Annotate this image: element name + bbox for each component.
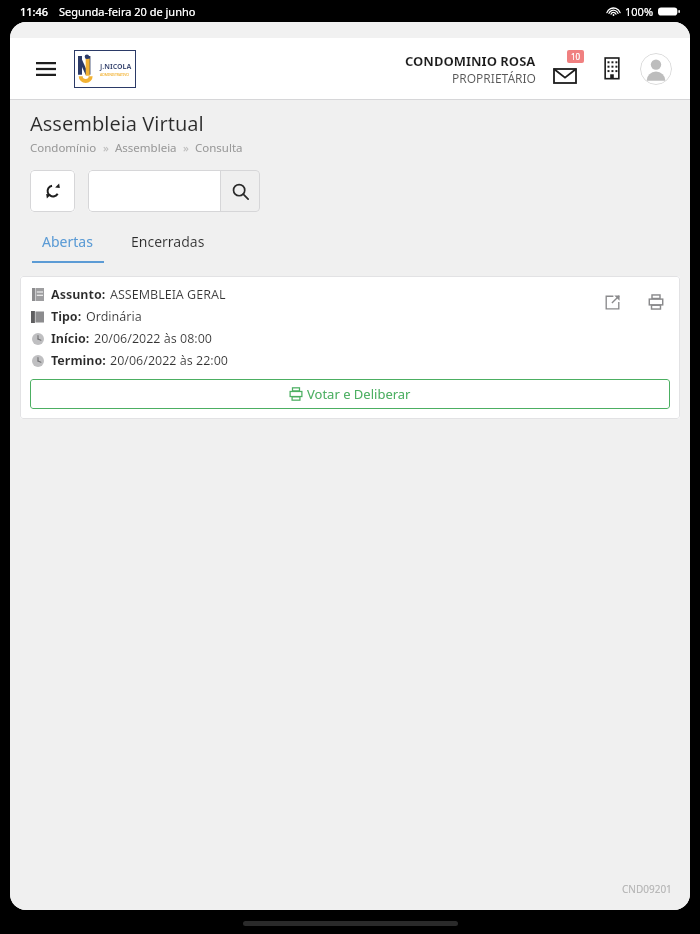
button[interactable]: Menu <box>28 51 64 87</box>
staticText: 20/06/2022 às 08:00 <box>94 330 212 347</box>
button[interactable]: Condomínio <box>596 53 628 85</box>
staticText: Segunda-feira 20 de junho <box>59 4 196 19</box>
staticText: Abertas <box>42 232 93 251</box>
staticText: 10 <box>571 51 581 62</box>
staticText: » <box>177 140 195 156</box>
staticText: Termino: <box>51 352 106 369</box>
button[interactable]: Pesquisar <box>221 170 260 212</box>
staticText: Tipo: <box>51 308 82 325</box>
staticText: 100% <box>625 4 654 19</box>
staticText: 11:46 <box>20 4 49 19</box>
button[interactable] <box>88 170 220 212</box>
staticText: » <box>97 140 115 156</box>
staticText: 20/06/2022 às 22:00 <box>110 352 228 369</box>
staticText: Assembleia <box>115 140 177 156</box>
staticText: ASSEMBLEIA GERAL <box>110 286 226 303</box>
button[interactable]: Perfil <box>640 53 672 85</box>
staticText: PROPRIETÁRIO <box>452 70 536 86</box>
button[interactable]: Atualizar <box>30 170 75 212</box>
staticText: Ordinária <box>86 308 142 325</box>
staticText: Condomínio <box>30 140 97 156</box>
staticText: CONDOMINIO ROSA <box>405 52 536 70</box>
button[interactable]: Abrir <box>598 288 626 316</box>
staticText: Assembleia Virtual <box>30 110 204 137</box>
button[interactable]: J.NICOLA <box>74 50 136 88</box>
button[interactable]: Encerradas <box>119 226 217 257</box>
button[interactable]: Mensagens <box>548 52 582 86</box>
staticText: ADMINISTRATIVO <box>100 72 129 77</box>
button[interactable]: Imprimir <box>642 288 670 316</box>
staticText: Início: <box>51 330 90 347</box>
button[interactable]: Votar e Deliberar <box>30 379 670 409</box>
staticText: Assunto: <box>51 286 106 303</box>
staticText: Encerradas <box>131 232 205 251</box>
staticText: CND09201 <box>622 882 672 896</box>
staticText: J.NICOLA <box>100 62 132 72</box>
button[interactable]: Abertas <box>30 226 105 257</box>
staticText: Consulta <box>195 140 243 156</box>
staticText: Votar e Deliberar <box>307 385 411 403</box>
